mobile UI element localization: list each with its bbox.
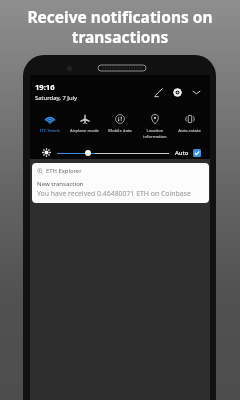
- staticText: You have received 0.46480071 ETH on Coin…: [37, 189, 191, 198]
- staticText: Receive notifications on transactions: [0, 6, 240, 47]
- button[interactable]: Auto brightness: [193, 149, 201, 157]
- button[interactable]: ETH Explorer: [32, 163, 209, 203]
- button[interactable]: Edit quick settings: [151, 85, 165, 99]
- button[interactable]: Airplane mode: [67, 112, 102, 134]
- button[interactable]: Mobile data: [102, 112, 137, 134]
- staticText: Auto-rotate: [178, 128, 201, 134]
- staticText: Saturday, 7 July: [35, 94, 78, 102]
- button[interactable]: Expand: [189, 85, 203, 99]
- staticText: Location information: [143, 128, 167, 138]
- staticText: Mobile data: [108, 128, 132, 134]
- staticText: ETH Explorer: [46, 167, 82, 175]
- button[interactable]: Settings: [170, 85, 184, 99]
- staticText: Auto: [175, 149, 189, 157]
- button[interactable]: Auto-rotate: [172, 112, 207, 134]
- button[interactable]: ITC Hotels: [33, 112, 67, 134]
- staticText: New transaction: [37, 179, 84, 187]
- staticText: Airplane mode: [70, 128, 99, 134]
- staticText: ITC Hotels: [40, 128, 60, 134]
- button[interactable]: Location information: [137, 112, 172, 138]
- staticText: 19:16: [35, 82, 55, 92]
